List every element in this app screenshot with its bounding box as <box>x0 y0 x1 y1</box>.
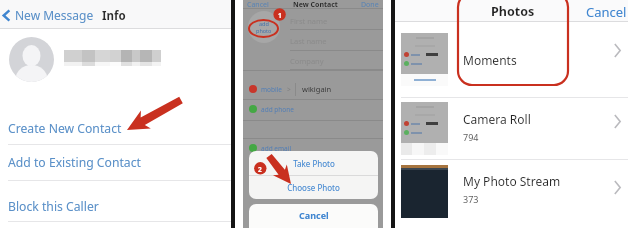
staticText: photo <box>256 27 272 34</box>
staticText: 2 <box>258 165 262 174</box>
staticText: Cancel <box>299 209 329 221</box>
staticText: New Contact <box>293 0 338 8</box>
staticText: Info <box>102 8 126 24</box>
staticText: wikigain <box>302 84 332 94</box>
staticText: Last name <box>290 36 327 46</box>
staticText: mobile <box>261 85 283 94</box>
staticText: Create New Contact <box>8 120 122 137</box>
staticText: Choose Photo <box>287 182 340 193</box>
button[interactable]: Block this Caller <box>0 195 231 217</box>
staticText: 1 <box>278 11 282 20</box>
staticText: add email <box>261 144 292 153</box>
button[interactable]: Take Photo <box>249 151 378 175</box>
button[interactable]: Back to New Message <box>0 6 97 24</box>
button[interactable]: Choose Photo <box>249 176 378 199</box>
staticText: Add to Existing Contact <box>8 154 141 171</box>
staticText: Company <box>290 56 324 66</box>
button[interactable]: Cancel <box>247 0 269 8</box>
button[interactable]: Done <box>361 0 379 8</box>
staticText: add <box>259 20 269 27</box>
button[interactable]: Camera Roll <box>395 98 628 159</box>
button[interactable]: Moments <box>395 22 628 97</box>
staticText: Take Photo <box>293 158 335 169</box>
staticText: New Message <box>15 7 94 23</box>
staticText: First name <box>290 16 328 26</box>
staticText: Block this Caller <box>8 198 99 215</box>
staticText: Camera Roll <box>463 111 531 127</box>
staticText: add phone <box>261 105 294 114</box>
button[interactable]: add email <box>249 140 383 156</box>
staticText: > <box>287 85 291 94</box>
button[interactable]: add photo <box>248 11 280 43</box>
button[interactable]: add phone <box>249 101 383 117</box>
staticText: 373 <box>463 193 479 205</box>
staticText: Photos <box>491 3 535 20</box>
button[interactable]: Add to Existing Contact <box>0 151 231 173</box>
staticText: Moments <box>463 52 517 68</box>
staticText: 794 <box>463 131 479 143</box>
button[interactable]: Cancel <box>586 3 627 21</box>
button[interactable]: Create New Contact <box>0 117 231 139</box>
button[interactable]: Cancel <box>249 204 378 228</box>
button[interactable]: My Photo Stream <box>395 160 628 222</box>
staticText: My Photo Stream <box>463 173 561 189</box>
